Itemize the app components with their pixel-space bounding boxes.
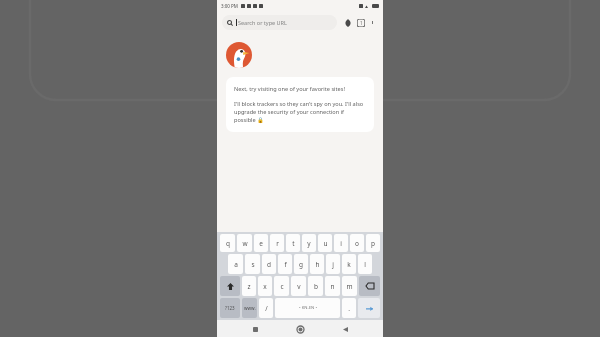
button[interactable]: . <box>342 298 356 318</box>
staticText: c <box>280 282 284 291</box>
button[interactable]: h <box>310 254 324 274</box>
button[interactable]: x <box>258 276 272 296</box>
button[interactable]: w <box>237 234 252 252</box>
button[interactable]: n <box>325 276 340 296</box>
button[interactable]: Shift <box>220 276 240 296</box>
button[interactable]: s <box>245 254 260 274</box>
staticText: j <box>332 260 334 269</box>
button[interactable]: DuckDuckGo <box>226 42 252 68</box>
staticText: Next, try visiting one of your favorite … <box>234 85 345 93</box>
button[interactable]: l <box>358 254 372 274</box>
other: Enter <box>366 305 373 312</box>
staticText: d <box>267 260 271 269</box>
button[interactable]: g <box>294 254 308 274</box>
staticText: i <box>340 239 342 248</box>
staticText: o <box>355 239 359 248</box>
button[interactable]: o <box>350 234 364 252</box>
staticText: l <box>364 260 366 269</box>
staticText: u <box>323 239 328 248</box>
button[interactable]: p <box>366 234 380 252</box>
staticText: ?123 <box>225 305 235 311</box>
button[interactable]: i <box>334 234 348 252</box>
staticText: . <box>348 304 350 313</box>
staticText: • KN-EN • <box>299 305 317 311</box>
button[interactable]: k <box>342 254 356 274</box>
button[interactable]: Search or type URL <box>222 15 337 30</box>
staticText: m <box>346 282 353 291</box>
button[interactable]: c <box>274 276 289 296</box>
staticText: / <box>265 304 268 313</box>
staticText: s <box>251 260 255 269</box>
staticText: I'll block trackers so they can't spy on… <box>234 100 366 124</box>
staticText: n <box>330 282 335 291</box>
staticText: w <box>242 239 248 248</box>
button[interactable]: Home <box>293 322 307 336</box>
staticText: Search or type URL <box>238 19 287 26</box>
staticText: www. <box>244 305 256 311</box>
button[interactable]: Fire button, clear tabs and data <box>341 16 354 29</box>
button[interactable]: d <box>262 254 276 274</box>
button[interactable]: More options <box>367 17 378 28</box>
staticText: q <box>226 239 230 248</box>
button[interactable]: j <box>326 254 340 274</box>
button[interactable]: Enter <box>358 298 380 318</box>
button[interactable]: a <box>228 254 243 274</box>
button[interactable]: ?123 <box>220 298 240 318</box>
button[interactable]: y <box>302 234 316 252</box>
button[interactable]: z <box>242 276 256 296</box>
button[interactable]: q <box>220 234 235 252</box>
button[interactable]: f <box>278 254 292 274</box>
staticText: p <box>371 239 375 248</box>
other: Backspace <box>366 283 374 289</box>
button[interactable]: Tabs <box>354 16 367 29</box>
staticText: z <box>247 282 251 291</box>
staticText: e <box>259 239 263 248</box>
staticText: r <box>276 239 279 248</box>
staticText: t <box>292 239 295 248</box>
staticText: k <box>347 260 351 269</box>
button[interactable]: v <box>291 276 306 296</box>
staticText: y <box>307 239 311 248</box>
staticText: b <box>314 282 318 291</box>
other: Shift <box>227 283 234 290</box>
staticText: f <box>284 260 287 269</box>
button[interactable]: u <box>318 234 332 252</box>
staticText: x <box>263 282 267 291</box>
staticText: 1 <box>360 20 363 26</box>
button[interactable]: r <box>270 234 284 252</box>
staticText: v <box>297 282 301 291</box>
staticText: a <box>234 260 238 269</box>
staticText: 3:00 PM <box>221 3 238 9</box>
button[interactable]: Backspace <box>359 276 380 296</box>
button[interactable]: www. <box>242 298 257 318</box>
button[interactable]: b <box>308 276 323 296</box>
button[interactable]: e <box>254 234 268 252</box>
staticText: g <box>299 260 303 269</box>
button[interactable]: m <box>342 276 357 296</box>
button[interactable]: • KN-EN • <box>275 298 340 318</box>
button[interactable]: / <box>259 298 273 318</box>
button[interactable]: Next, try visiting one of your favorite … <box>226 77 374 132</box>
button[interactable]: t <box>286 234 300 252</box>
staticText: h <box>315 260 320 269</box>
button[interactable]: Recents <box>248 322 262 336</box>
button[interactable]: Back <box>338 322 352 336</box>
